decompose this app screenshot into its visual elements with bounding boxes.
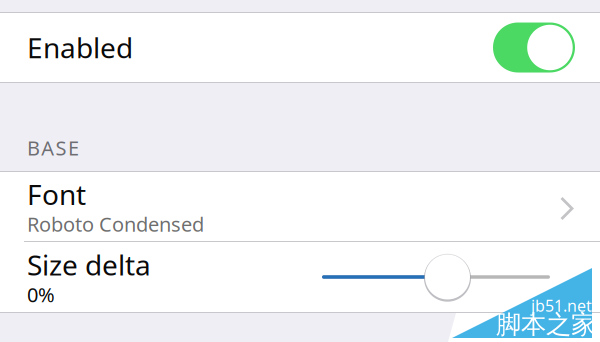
staticText: Enabled — [27, 29, 133, 66]
button[interactable]: Size delta — [0, 242, 600, 312]
button[interactable]: Enabled, on — [493, 22, 575, 72]
button[interactable]: Size delta, 0 percent — [322, 254, 550, 300]
staticText: Size delta — [27, 246, 151, 283]
staticText: Font — [27, 176, 86, 213]
staticText: 脚本之家 — [496, 309, 596, 340]
button[interactable]: Font — [0, 172, 600, 241]
staticText: Roboto Condensed — [27, 211, 204, 237]
staticText: BASE — [27, 134, 79, 161]
button[interactable]: Enabled — [0, 13, 600, 82]
staticText: jb51.net — [531, 295, 592, 316]
staticText: 0% — [27, 281, 55, 308]
